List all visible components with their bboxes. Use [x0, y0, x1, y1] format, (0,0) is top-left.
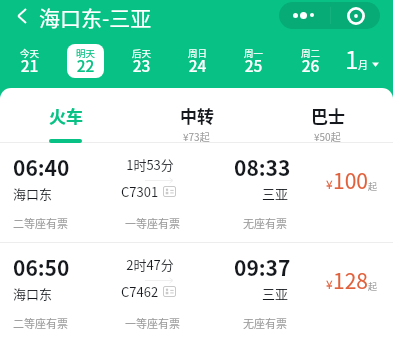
staticText: 后天 [123, 46, 160, 60]
staticText: 128 [333, 265, 368, 295]
staticText: ¥ [326, 175, 333, 192]
staticText: 25 [235, 54, 272, 76]
staticText: 100 [333, 165, 368, 195]
staticText: 起 [368, 280, 378, 293]
staticText: 海口东 [13, 284, 53, 303]
button[interactable]: 后天 [123, 44, 160, 78]
staticText: 起 [368, 180, 378, 193]
button[interactable]: 明天 [67, 44, 104, 78]
button[interactable]: Back [5, 0, 38, 33]
button[interactable]: 1 [340, 44, 390, 82]
staticText: 今天 [11, 46, 48, 60]
staticText: 二等座有票 [13, 315, 68, 331]
staticText: 周一 [235, 46, 272, 60]
staticText: 火车 [49, 103, 83, 128]
button[interactable]: 巴士 [262, 88, 393, 143]
staticText: 06:50 [13, 252, 70, 282]
button[interactable]: More options [279, 2, 330, 29]
staticText: 一等座有票 [125, 215, 180, 231]
staticText: ¥50起 [314, 129, 341, 143]
staticText: 1 [345, 41, 359, 76]
staticText: ¥ [326, 275, 333, 292]
button[interactable]: Close mini program [331, 2, 380, 29]
button[interactable]: 周二 [292, 44, 329, 78]
staticText: 一等座有票 [125, 315, 180, 331]
button[interactable]: 中转 [131, 88, 262, 143]
button[interactable]: 今天 [11, 44, 48, 78]
staticText: 无座有票 [243, 315, 287, 331]
staticText: 三亚 [225, 184, 288, 203]
button[interactable]: 火车 [0, 88, 131, 143]
staticText: 周日 [179, 46, 216, 60]
staticText: 22 [67, 54, 104, 76]
staticText: 二等座有票 [13, 215, 68, 231]
staticText: C7462 [121, 282, 159, 301]
staticText: 明天 [67, 46, 104, 60]
staticText: 无座有票 [243, 215, 287, 231]
staticText: 08:33 [234, 152, 291, 182]
staticText: 23 [123, 54, 160, 76]
staticText: 21 [11, 54, 48, 76]
staticText: 月 [358, 57, 368, 71]
staticText: 2时47分 [105, 255, 195, 274]
staticText: 海口东 [13, 184, 53, 203]
button[interactable]: 06:40 [0, 143, 393, 242]
staticText: 海口东-三亚 [39, 2, 152, 32]
staticText: ¥73起 [183, 129, 210, 143]
staticText: 1时53分 [105, 155, 195, 174]
button[interactable]: 06:50 [0, 243, 393, 342]
staticText: 中转 [180, 103, 214, 128]
staticText: 巴士 [311, 103, 345, 128]
button[interactable]: 周一 [235, 44, 272, 78]
staticText: 26 [292, 54, 329, 76]
staticText: 09:37 [234, 252, 291, 282]
staticText: 24 [179, 54, 216, 76]
staticText: 06:40 [13, 152, 70, 182]
button[interactable]: 周日 [179, 44, 216, 78]
staticText: 三亚 [225, 284, 288, 303]
staticText: C7301 [121, 182, 159, 201]
staticText: 周二 [292, 46, 329, 60]
